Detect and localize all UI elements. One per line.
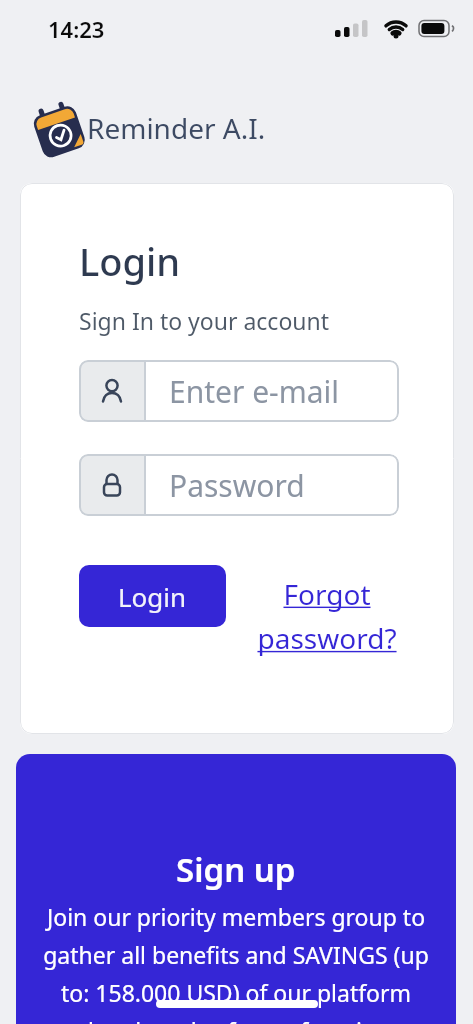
staticText: 14:23 <box>48 14 105 44</box>
staticText: Sign up <box>176 847 296 892</box>
button[interactable]: Sign up <box>16 754 456 1024</box>
button[interactable]: Login <box>79 565 226 627</box>
staticText: Sign In to your account <box>79 305 330 336</box>
button[interactable]: Forgot password? <box>254 575 399 657</box>
staticText: Enter e-mail <box>169 371 340 412</box>
staticText: Join our priority members group to gathe… <box>43 901 429 1024</box>
button[interactable]: Password <box>79 454 399 516</box>
staticText: Login <box>79 235 181 287</box>
staticText: Password <box>169 465 305 506</box>
button[interactable]: Enter e-mail <box>79 360 399 422</box>
staticText: Forgot password? <box>257 575 397 657</box>
staticText: Login <box>118 579 187 614</box>
staticText: Reminder A.I. <box>87 109 266 147</box>
